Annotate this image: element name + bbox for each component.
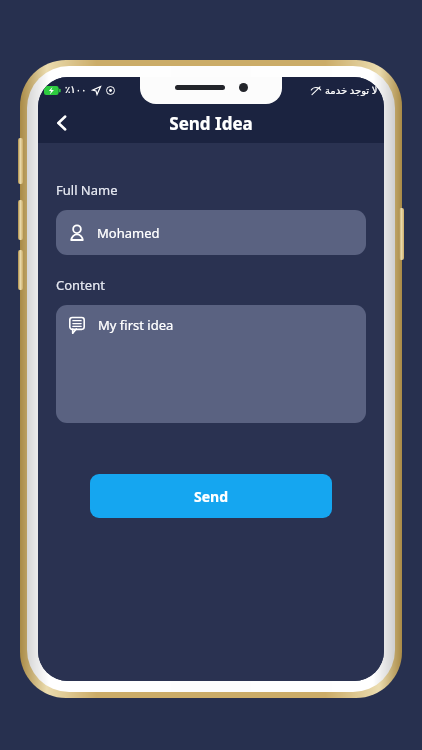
staticText: Send	[194, 487, 229, 506]
staticText: Send Idea	[169, 112, 253, 135]
staticText: لا توجد خدمة	[325, 83, 378, 97]
staticText: My first idea	[98, 316, 174, 334]
button[interactable]: Mohamed	[56, 210, 366, 255]
staticText: Full Name	[56, 181, 118, 199]
button[interactable]: Send	[90, 474, 332, 518]
staticText: Content	[56, 276, 105, 294]
staticText: Mohamed	[97, 224, 160, 242]
button[interactable]: My first idea	[56, 305, 366, 423]
button[interactable]: Back	[44, 105, 80, 141]
staticText: ٪١٠٠	[65, 84, 87, 96]
